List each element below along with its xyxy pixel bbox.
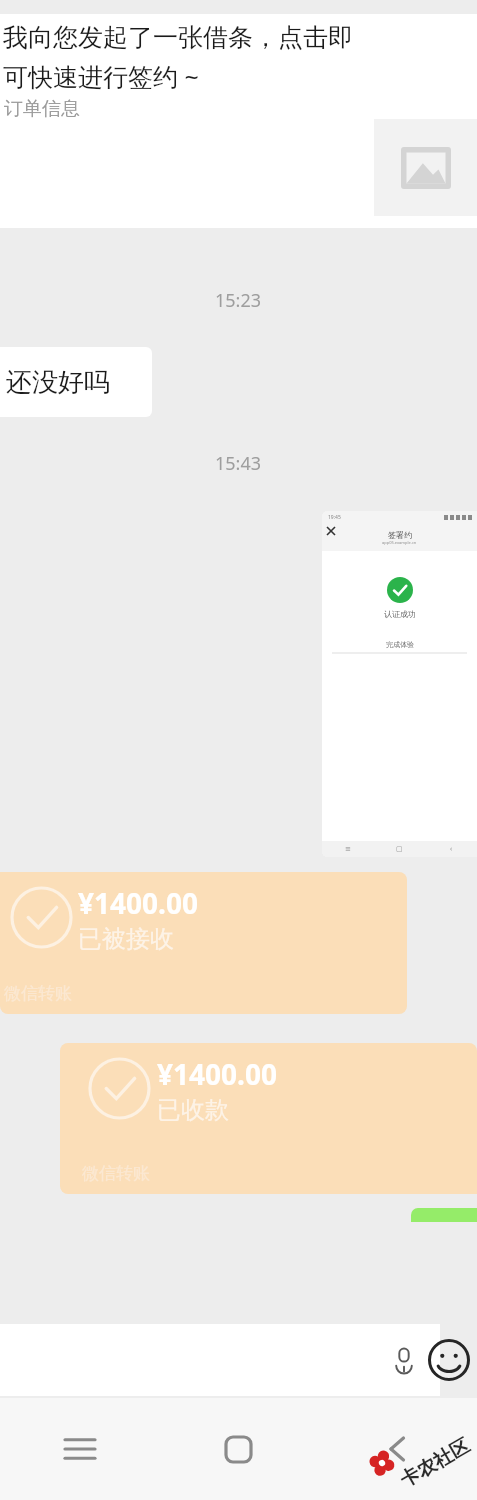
staticText: ≡ (345, 845, 351, 853)
staticText: ¥1400.00 (157, 1055, 277, 1093)
button[interactable]: ¥1400.00 (0, 872, 407, 1014)
staticText: ¥1400.00 (78, 884, 198, 922)
staticText: 我向您发起了一张借条，点击即 可快速进行签约 ~ (3, 22, 353, 93)
button[interactable] (411, 1208, 477, 1222)
staticText: 已收款 (157, 1095, 229, 1125)
staticText: 微信转账 (82, 1163, 150, 1184)
button[interactable]: Back (318, 1398, 477, 1500)
staticText: 还没好吗 (6, 366, 110, 399)
button[interactable]: Recent apps (0, 1398, 159, 1500)
staticText: app05.example.cn (382, 540, 417, 545)
button[interactable]: Home (159, 1398, 318, 1500)
button[interactable]: ¥1400.00 (60, 1043, 477, 1194)
button[interactable]: Voice input (0, 1324, 440, 1396)
staticText: 完成体验 (386, 640, 414, 649)
button[interactable]: 19:45 (322, 511, 477, 857)
button[interactable]: Voice input (384, 1340, 424, 1380)
staticText: 订单信息 (4, 97, 80, 121)
staticText: ‹ (450, 844, 453, 854)
staticText: 已被接收 (78, 924, 174, 954)
staticText: 认证成功 (384, 609, 416, 619)
staticText: 15:43 (215, 451, 262, 476)
staticText: 15:23 (215, 288, 262, 313)
staticText: ▢ (396, 845, 403, 853)
button[interactable]: Emoji (421, 1332, 477, 1388)
staticText: 签署约 (388, 530, 412, 540)
staticText: 19:45 (328, 514, 341, 521)
button[interactable]: 我向您发起了一张借条，点击即 可快速进行签约 ~ (0, 14, 477, 228)
staticText: 卡农社区 (396, 1434, 474, 1492)
button[interactable]: 完成体验 (332, 635, 467, 653)
staticText: 微信转账 (4, 983, 72, 1004)
button[interactable]: 还没好吗 (0, 347, 152, 417)
